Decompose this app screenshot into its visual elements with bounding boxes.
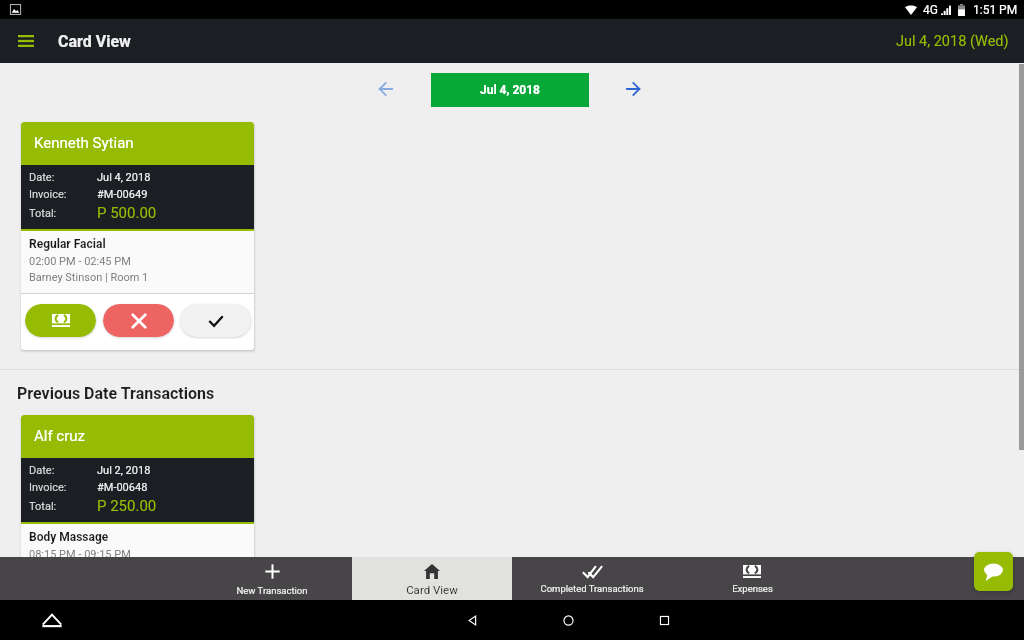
button[interactable]: Jul 4, 2018 (431, 73, 589, 107)
staticText: New Transaction (236, 585, 308, 596)
button[interactable]: Kenneth Sytian (21, 122, 254, 350)
button[interactable]: Previous day (370, 73, 402, 105)
staticText: Total: (29, 207, 57, 220)
staticText: Expenses (732, 583, 773, 594)
button[interactable]: Alf cruz (21, 415, 254, 586)
staticText: Date: (29, 464, 55, 477)
button[interactable]: Pay (25, 304, 96, 337)
staticText: #M-00649 (97, 188, 148, 201)
staticText: 02:00 PM - 02:45 PM (29, 255, 131, 268)
staticText: Invoice: (29, 188, 67, 201)
staticText: Date: (29, 171, 55, 184)
staticText: Total: (29, 500, 57, 513)
button[interactable]: Jul 4, 2018 (Wed) (896, 33, 1009, 50)
staticText: Invoice: (29, 481, 67, 494)
staticText: Barney Stinson | Room 1 (29, 271, 149, 284)
staticText: Jul 2, 2018 (97, 464, 151, 477)
button[interactable]: Confirm (180, 304, 251, 337)
staticText: P 250.00 (97, 497, 157, 515)
button[interactable]: Card View (352, 557, 512, 600)
staticText: Kenneth Sytian (34, 134, 134, 152)
staticText: Previous Date Transactions (17, 384, 215, 403)
staticText: Card View (406, 583, 458, 596)
button[interactable]: Chat (974, 552, 1013, 591)
staticText: Jul 4, 2018 (480, 83, 540, 97)
staticText: Body Massage (29, 530, 109, 544)
button[interactable]: Expenses (672, 557, 832, 600)
staticText: #M-00648 (97, 481, 148, 494)
button[interactable]: New Transaction (192, 557, 352, 600)
button[interactable]: Menu (13, 28, 39, 54)
button[interactable]: Next day (617, 73, 649, 105)
button[interactable]: Cancel (103, 304, 174, 337)
staticText: Regular Facial (29, 237, 106, 251)
staticText: 1:51 PM (973, 3, 1018, 17)
staticText: Completed Transactions (540, 583, 644, 594)
staticText: Alf cruz (34, 427, 86, 445)
staticText: Card View (58, 32, 131, 51)
button[interactable]: Completed Transactions (512, 557, 672, 600)
staticText: 4G (923, 3, 938, 17)
staticText: P 500.00 (97, 204, 157, 222)
staticText: 08:15 PM - 09:15 PM (29, 548, 131, 561)
staticText: Jul 4, 2018 (97, 171, 151, 184)
